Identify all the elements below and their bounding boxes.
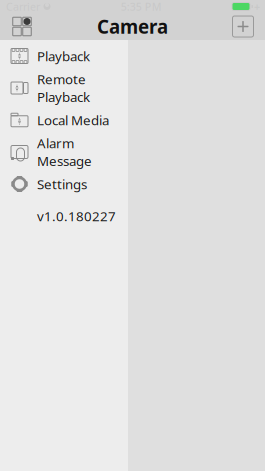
button[interactable]: Local Media: [0, 104, 128, 136]
button[interactable]: Playback: [0, 40, 128, 72]
staticText: Remote Playback: [37, 70, 90, 106]
button[interactable]: Remote Playback: [0, 72, 128, 104]
staticText: Local Media: [37, 111, 109, 129]
staticText: v1.0.180227: [37, 207, 116, 225]
button[interactable]: Devices: [0, 13, 44, 40]
button[interactable]: Add: [221, 13, 265, 40]
staticText: Playback: [37, 47, 90, 65]
button[interactable]: Alarm Message: [0, 136, 128, 168]
staticText: Camera: [97, 14, 168, 39]
staticText: Settings: [37, 175, 87, 193]
staticText: Alarm Message: [37, 134, 92, 170]
button[interactable]: Settings: [0, 168, 128, 200]
